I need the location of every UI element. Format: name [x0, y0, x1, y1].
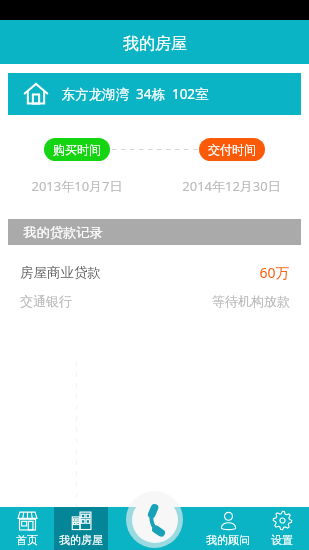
button[interactable]: 东方龙湖湾 34栋 102室: [8, 73, 301, 115]
staticText: 我的顾问: [206, 533, 250, 547]
button[interactable]: 我的顾问: [201, 507, 255, 550]
staticText: 等待机构放款: [212, 293, 290, 309]
staticText: 60万: [259, 263, 290, 282]
button[interactable]: 交付时间: [199, 138, 265, 161]
staticText: 我的房屋: [123, 34, 187, 54]
button[interactable]: 首页: [0, 507, 54, 550]
button[interactable]: 房屋商业贷款: [20, 263, 290, 282]
staticText: 交通银行: [20, 293, 72, 309]
staticText: 交付时间: [208, 142, 256, 157]
button[interactable]: 我的房屋: [54, 507, 108, 550]
staticText: 首页: [16, 533, 38, 547]
staticText: 我的贷款记录: [23, 224, 103, 241]
staticText: 我的房屋: [59, 533, 103, 547]
staticText: 购买时间: [53, 142, 101, 157]
staticText: 房屋商业贷款: [20, 264, 101, 281]
button[interactable]: Call: [126, 491, 183, 548]
staticText: 2014年12月30日: [182, 177, 281, 195]
staticText: 设置: [271, 533, 293, 547]
button[interactable]: 设置: [255, 507, 309, 550]
staticText: 东方龙湖湾 34栋 102室: [61, 85, 209, 103]
staticText: 2013年10月7日: [31, 177, 123, 195]
button[interactable]: 购买时间: [44, 138, 110, 161]
